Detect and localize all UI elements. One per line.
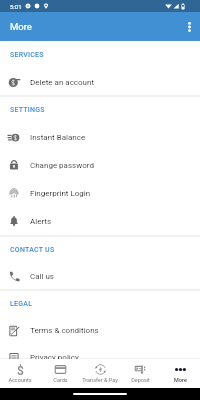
staticText: $ [17, 364, 24, 375]
button[interactable]: More [160, 359, 200, 388]
staticText: Change password [30, 161, 94, 170]
staticText: Terms & conditions [30, 326, 99, 335]
button[interactable]: Call us [0, 263, 200, 289]
button[interactable]: Transfer & Pay [80, 359, 120, 388]
button[interactable]: Deposit [120, 359, 160, 388]
staticText: 5:01 [10, 3, 22, 10]
button[interactable]: Instant Balance [0, 123, 200, 151]
staticText: SERVICES [10, 51, 44, 59]
button[interactable]: More options [178, 12, 200, 41]
staticText: Call us [30, 272, 54, 281]
button[interactable]: Cards [40, 359, 80, 388]
button[interactable]: Change password [0, 151, 200, 179]
button[interactable]: Privacy policy [0, 344, 200, 359]
button[interactable]: Fingerprint Login [0, 179, 200, 207]
staticText: Deposit [131, 377, 150, 383]
staticText: Privacy policy [30, 353, 79, 359]
staticText: More [10, 21, 32, 32]
staticText: Alerts [30, 217, 52, 226]
staticText: LEGAL [10, 300, 33, 308]
staticText: Fingerprint Login [30, 189, 91, 198]
staticText: Accounts [8, 377, 32, 383]
button[interactable]: Delete an account [0, 69, 200, 95]
button[interactable]: $ [0, 359, 40, 388]
staticText: Delete an account [30, 78, 95, 87]
staticText: More [174, 377, 187, 383]
staticText: Instant Balance [30, 133, 86, 142]
staticText: Cards [53, 377, 68, 383]
staticText: CONTACT US [10, 246, 55, 254]
button[interactable]: Terms & conditions [0, 317, 200, 344]
staticText: Transfer & Pay [82, 377, 118, 383]
button[interactable]: Alerts [0, 207, 200, 235]
staticText: SETTINGS [10, 106, 45, 114]
